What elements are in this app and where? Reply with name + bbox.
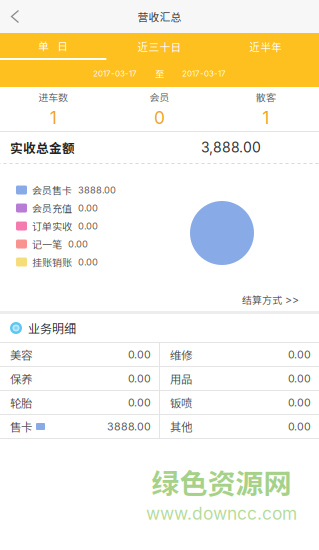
staticText: 0.00 [78, 220, 98, 232]
staticText: 3,888.00 [201, 139, 261, 156]
button[interactable]: 单 日 [0, 33, 106, 60]
button[interactable]: 散客 [213, 87, 319, 131]
button[interactable]: 会员 [106, 87, 213, 131]
staticText: 营收汇总 [137, 9, 181, 24]
staticText: 结算方式 [242, 292, 282, 307]
button[interactable]: 其他 [160, 415, 319, 438]
staticText: 用品 [170, 370, 192, 387]
button[interactable]: 2017-03-17 [89, 66, 141, 81]
staticText: 会员售卡 [32, 183, 72, 197]
staticText: 钣喷 [170, 394, 192, 411]
staticText: 单 日 [38, 38, 68, 53]
button[interactable]: 轮胎 [0, 391, 159, 414]
staticText: 保养 [10, 370, 32, 387]
staticText: 0.00 [78, 202, 98, 214]
staticText: 散客 [256, 90, 276, 104]
staticText: 0.00 [128, 396, 151, 409]
staticText: 进车数 [38, 90, 68, 104]
staticText: 0 [154, 107, 165, 128]
staticText: 0.00 [128, 372, 151, 385]
staticText: 0.00 [288, 420, 311, 433]
staticText: www.downcc.com [146, 503, 297, 524]
button[interactable]: 保养 [0, 367, 159, 390]
staticText: 0.00 [128, 348, 151, 361]
staticText: 0.00 [288, 396, 311, 409]
button[interactable]: 近半年 [213, 33, 319, 60]
staticText: 0.00 [288, 372, 311, 385]
staticText: 实收总金额 [10, 138, 75, 157]
button[interactable]: 售卡 [0, 415, 159, 438]
button[interactable]: 近三十日 [106, 33, 213, 60]
staticText: 售卡 [10, 418, 32, 435]
button[interactable]: 美容 [0, 343, 159, 366]
staticText: 1 [262, 107, 269, 128]
staticText: 0.00 [288, 348, 311, 361]
staticText: 近半年 [249, 39, 282, 54]
button[interactable]: 2017-03-17 [178, 66, 230, 81]
staticText: 会员 [149, 90, 169, 104]
button[interactable]: 维修 [160, 343, 319, 366]
staticText: 其他 [170, 418, 192, 435]
staticText: 记一笔 [32, 237, 62, 251]
staticText: 3888.00 [107, 420, 151, 433]
staticText: 订单实收 [32, 219, 72, 233]
staticText: 挂账销账 [32, 255, 72, 269]
button[interactable]: 进车数 [0, 87, 106, 131]
staticText: 0.00 [68, 238, 88, 250]
staticText: 2017-03-17 [93, 69, 137, 78]
staticText: 1 [50, 107, 57, 128]
staticText: 业务明细 [28, 319, 76, 337]
staticText: 绿色资源网 [151, 461, 291, 502]
button[interactable]: 结算方式 [234, 288, 307, 311]
staticText: 3888.00 [78, 184, 116, 196]
staticText: 0.00 [78, 256, 98, 268]
staticText: >> [285, 293, 299, 306]
staticText: 2017-03-17 [182, 69, 226, 78]
staticText: 至 [155, 67, 164, 80]
staticText: 近三十日 [137, 39, 181, 54]
button[interactable]: 钣喷 [160, 391, 319, 414]
staticText: 维修 [170, 346, 192, 363]
button[interactable]: Back [0, 0, 30, 33]
button[interactable]: 用品 [160, 367, 319, 390]
staticText: 轮胎 [10, 394, 32, 411]
staticText: 会员充值 [32, 201, 72, 215]
staticText: 美容 [10, 346, 32, 363]
